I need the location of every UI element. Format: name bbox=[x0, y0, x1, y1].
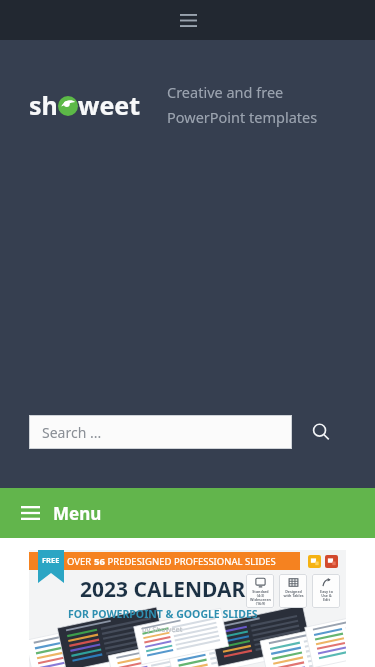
staticText: 2023 CALENDAR bbox=[80, 575, 246, 604]
staticText: Menu bbox=[53, 502, 102, 525]
staticText: FOR POWERPOINT & GOOGLE SLIDES bbox=[68, 607, 258, 621]
staticText: weet bbox=[78, 88, 141, 122]
staticText: OVER bbox=[67, 555, 94, 568]
button[interactable]: OVER bbox=[29, 550, 346, 667]
button[interactable]: Menu bbox=[0, 488, 375, 538]
staticText: 56 bbox=[94, 555, 105, 568]
staticText: Standard (4:3) Widescreen (16:9) bbox=[250, 589, 271, 607]
button[interactable]: Search ... bbox=[29, 415, 292, 449]
button[interactable]: Standard (4:3) Widescreen (16:9) bbox=[246, 574, 274, 608]
button[interactable]: Open navigation menu bbox=[171, 6, 205, 34]
staticText: Designed with Tables bbox=[283, 589, 304, 599]
staticText: Easy to Use & Edit bbox=[320, 589, 333, 603]
staticText: by Showeet bbox=[142, 624, 183, 634]
staticText: PowerPoint templates bbox=[167, 107, 318, 127]
staticText: Search ... bbox=[42, 423, 102, 442]
staticText: sh bbox=[29, 88, 58, 122]
button[interactable]: Search bbox=[304, 415, 338, 449]
staticText: Creative and free bbox=[167, 82, 284, 102]
staticText: PREDESIGNED PROFESSIONAL SLIDES bbox=[105, 555, 276, 568]
button[interactable]: Easy to Use & Edit bbox=[312, 574, 340, 608]
button[interactable]: Designed with Tables bbox=[279, 574, 307, 608]
staticText: FREE bbox=[42, 555, 60, 565]
